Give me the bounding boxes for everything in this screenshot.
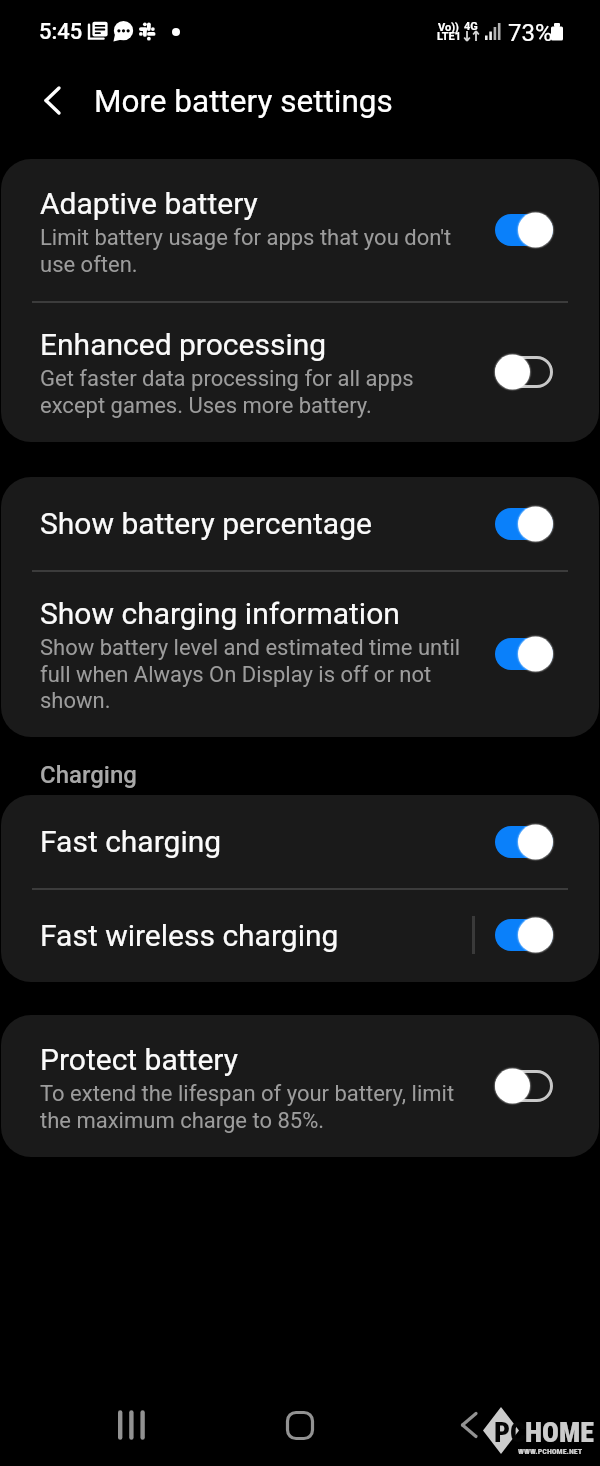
button[interactable]: Navigate up — [30, 80, 74, 124]
button[interactable]: Switch off — [491, 1062, 557, 1110]
staticText: WWW.PCHOME.NET — [518, 1447, 583, 1456]
staticText: Show charging information — [40, 596, 400, 631]
staticText: PC — [494, 1416, 527, 1449]
staticText: Adaptive battery — [40, 186, 258, 221]
button[interactable]: Switch on — [491, 911, 557, 959]
staticText: Limit battery usage for apps that you do… — [40, 225, 465, 277]
staticText: Protect battery — [40, 1042, 238, 1077]
staticText: More battery settings — [94, 83, 393, 120]
button[interactable]: Show charging information — [1, 570, 599, 737]
button[interactable]: Switch on — [491, 500, 557, 548]
button[interactable]: Show battery percentage — [1, 477, 599, 570]
button[interactable]: Fast charging — [1, 795, 599, 888]
staticText: Enhanced processing — [40, 327, 327, 362]
button[interactable]: Home — [268, 1393, 332, 1457]
button[interactable]: Adaptive battery — [1, 159, 599, 301]
staticText: Fast wireless charging — [40, 918, 339, 953]
staticText: Show battery level and estimated time un… — [40, 635, 468, 713]
staticText: Charging — [40, 761, 137, 789]
button[interactable]: Switch on — [491, 630, 557, 678]
staticText: HOME — [525, 1416, 594, 1449]
staticText: To extend the lifespan of your battery, … — [40, 1081, 468, 1133]
button[interactable]: Protect battery — [1, 1015, 599, 1157]
staticText: 5:45 — [39, 19, 83, 45]
staticText: 73% — [508, 19, 553, 47]
button[interactable]: Enhanced processing — [1, 301, 599, 442]
staticText: Show battery percentage — [40, 506, 372, 541]
staticText: 4G — [464, 20, 478, 33]
button[interactable]: Recent apps — [100, 1393, 164, 1457]
staticText: Vo)) — [438, 21, 459, 34]
button[interactable]: Switch on — [491, 818, 557, 866]
button[interactable]: Fast wireless charging — [1, 888, 599, 982]
staticText: Fast charging — [40, 824, 222, 859]
staticText: Get faster data processing for all apps … — [40, 366, 465, 418]
button[interactable]: Switch off — [491, 348, 557, 396]
button[interactable]: Back — [436, 1393, 500, 1457]
staticText: LTE1 — [437, 30, 462, 43]
button[interactable]: Switch on — [491, 206, 557, 254]
